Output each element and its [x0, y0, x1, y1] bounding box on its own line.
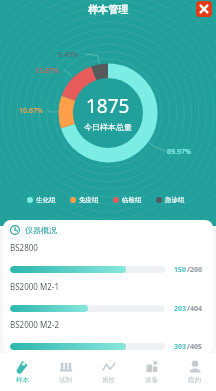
button[interactable]: 样本	[0, 353, 44, 391]
staticText: /404	[187, 304, 202, 314]
staticText: 急诊组	[165, 196, 185, 204]
button[interactable]: 设备	[130, 353, 173, 391]
staticText: 10.67%	[19, 106, 43, 116]
button[interactable]: BS2800	[3, 242, 213, 280]
staticText: /405	[187, 342, 202, 352]
staticText: 样本	[16, 376, 29, 384]
button[interactable]: BS2000 M2-1	[3, 281, 213, 319]
staticText: 仪器概况	[25, 225, 57, 235]
button[interactable]: BS2000 M2-2	[3, 319, 213, 353]
staticText: 1875	[86, 93, 130, 119]
staticText: 303	[174, 342, 187, 352]
staticText: 5.49%	[58, 50, 78, 60]
button[interactable]: 我的	[173, 353, 216, 391]
staticText: 今日样本总量	[84, 122, 132, 132]
staticText: 我的	[188, 376, 201, 384]
staticText: 试剂	[59, 376, 72, 384]
staticText: 设备	[145, 376, 158, 384]
staticText: 13.87%	[35, 66, 59, 76]
staticText: 203	[174, 304, 187, 314]
staticText: /200	[187, 265, 202, 275]
staticText: 69.97%	[167, 147, 191, 157]
button[interactable]: Close	[196, 1, 212, 17]
staticText: 临检组	[122, 196, 142, 204]
staticText: 生化组	[36, 196, 56, 204]
staticText: BS2000 M2-2	[10, 319, 59, 330]
staticText: BS2000 M2-1	[10, 281, 59, 292]
staticText: BS2800	[10, 242, 38, 253]
button[interactable]: 质控	[87, 353, 130, 391]
staticText: 质控	[102, 376, 115, 384]
staticText: 免疫组	[79, 196, 99, 204]
staticText: 样本管理	[88, 3, 128, 16]
button[interactable]: 试剂	[44, 353, 87, 391]
staticText: 150	[174, 265, 187, 275]
